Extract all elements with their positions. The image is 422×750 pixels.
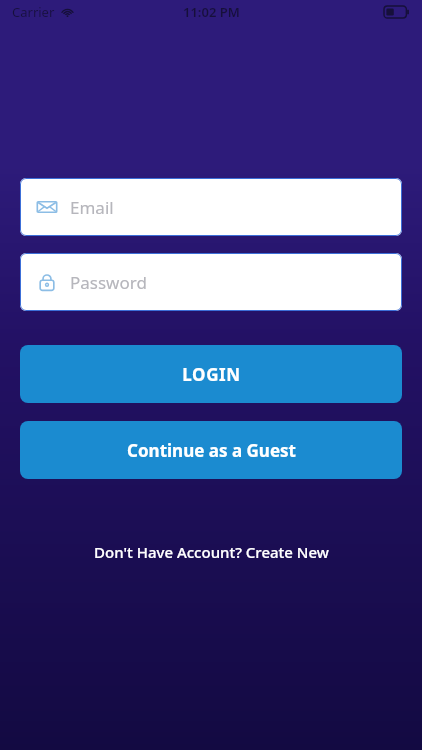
staticText: Don't Have Account? Create New: [94, 542, 329, 562]
button[interactable]: LOGIN: [20, 345, 402, 403]
staticText: Continue as a Guest: [127, 439, 296, 462]
staticText: Password: [70, 271, 147, 294]
staticText: LOGIN: [182, 363, 241, 386]
staticText: Email: [70, 196, 114, 219]
button[interactable]: Continue as a Guest: [20, 421, 402, 479]
button[interactable]: Email: [20, 178, 402, 236]
button[interactable]: Password: [20, 253, 402, 311]
staticText: 11:02 PM: [183, 3, 240, 21]
button[interactable]: Don't Have Account? Create New: [0, 536, 422, 568]
staticText: Carrier: [12, 3, 55, 21]
